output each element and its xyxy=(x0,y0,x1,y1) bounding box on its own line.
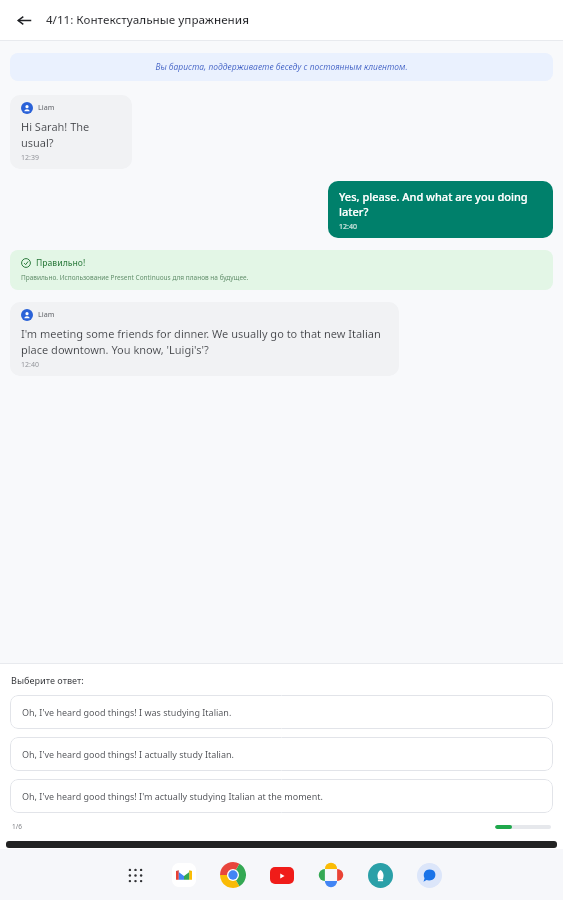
staticText: 12:39 xyxy=(21,153,39,163)
staticText: 12:40 xyxy=(339,222,357,232)
button[interactable]: Chrome xyxy=(219,861,247,889)
button[interactable]: Assistant xyxy=(366,861,394,889)
button[interactable]: Back xyxy=(10,6,38,34)
staticText: Hi Sarah! The usual? xyxy=(21,119,121,150)
button[interactable]: Liam xyxy=(10,95,132,169)
button[interactable]: Yes, please. And what are you doing late… xyxy=(328,181,553,238)
staticText: Вы бариста, поддерживаете беседу с посто… xyxy=(155,61,408,73)
staticText: Liam xyxy=(38,310,55,320)
button[interactable]: Liam xyxy=(10,302,399,376)
staticText: I'm meeting some friends for dinner. We … xyxy=(21,326,388,357)
staticText: 12:40 xyxy=(21,360,39,370)
button[interactable]: Oh, I've heard good things! I'm actually… xyxy=(10,779,553,813)
button[interactable]: Photos xyxy=(317,861,345,889)
staticText: 4/11: Контекстуальные упражнения xyxy=(46,12,249,28)
button[interactable]: Messages xyxy=(415,861,443,889)
button[interactable]: Gmail xyxy=(170,861,198,889)
button[interactable]: All apps xyxy=(121,861,149,889)
staticText: 1/6 xyxy=(12,822,22,831)
staticText: Правильно! xyxy=(36,257,86,269)
button[interactable]: Oh, I've heard good things! I actually s… xyxy=(10,737,553,771)
staticText: Правильно. Использование Present Continu… xyxy=(21,273,249,282)
staticText: Yes, please. And what are you doing late… xyxy=(339,189,542,219)
staticText: Oh, I've heard good things! I was studyi… xyxy=(22,706,232,718)
staticText: Oh, I've heard good things! I actually s… xyxy=(22,748,234,760)
staticText: Oh, I've heard good things! I'm actually… xyxy=(22,790,323,802)
button[interactable]: Oh, I've heard good things! I was studyi… xyxy=(10,695,553,729)
staticText: Liam xyxy=(38,103,55,113)
staticText: Выберите ответ: xyxy=(11,674,84,686)
button[interactable]: YouTube xyxy=(268,861,296,889)
